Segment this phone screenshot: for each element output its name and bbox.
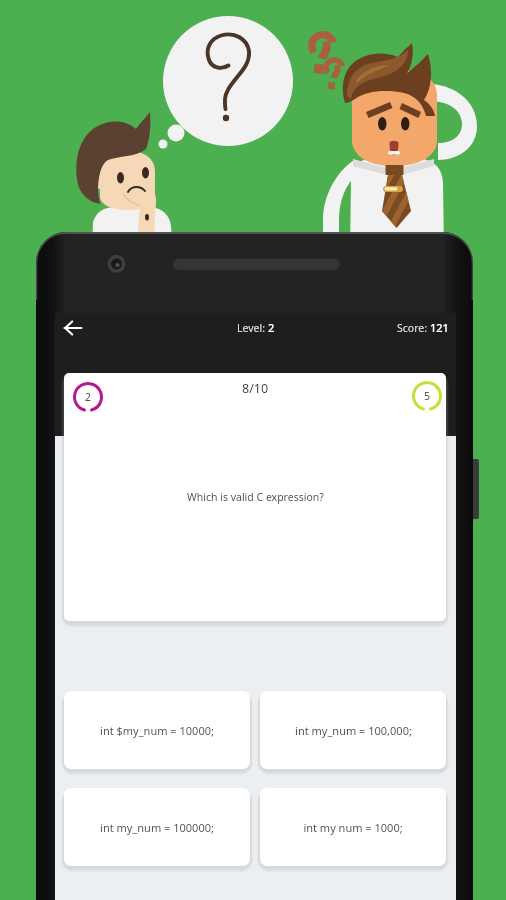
staticText: 5 <box>424 389 431 403</box>
staticText: int my_num = 100,000; <box>295 723 412 738</box>
staticText: 121 <box>430 320 449 335</box>
staticText: int my_num = 100000; <box>100 820 214 835</box>
button[interactable]: int my_num = 100000; <box>64 788 250 866</box>
staticText: Which is valid C expression? <box>187 490 324 504</box>
staticText: Level: <box>237 321 268 335</box>
button[interactable]: int my num = 1000; <box>260 788 446 866</box>
button[interactable]: Back <box>57 313 89 342</box>
staticText: int my num = 1000; <box>303 820 403 835</box>
button[interactable]: int my_num = 100,000; <box>260 691 446 769</box>
staticText: 8/10 <box>242 380 269 397</box>
staticText: int $my_num = 10000; <box>100 723 214 738</box>
button[interactable]: int $my_num = 10000; <box>64 691 250 769</box>
staticText: Score: <box>397 321 430 335</box>
staticText: 2 <box>268 320 275 335</box>
staticText: 2 <box>85 390 92 404</box>
